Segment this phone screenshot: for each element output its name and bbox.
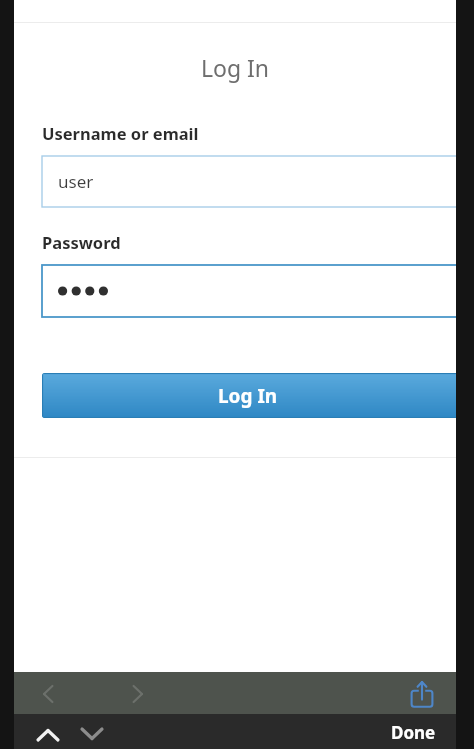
- button[interactable]: Share: [402, 674, 442, 714]
- button[interactable]: Forward: [116, 676, 160, 712]
- staticText: Password: [42, 231, 121, 253]
- button[interactable]: Username or email input: [42, 156, 472, 207]
- button[interactable]: Done: [376, 716, 450, 748]
- staticText: Username or email: [42, 122, 199, 144]
- staticText: Log In: [218, 383, 278, 409]
- button[interactable]: Log In: [42, 373, 472, 418]
- button[interactable]: Next field: [70, 716, 114, 748]
- staticText: user: [58, 170, 94, 193]
- button[interactable]: Back: [26, 676, 70, 712]
- button[interactable]: Password input: [42, 265, 472, 317]
- staticText: Done: [391, 721, 436, 744]
- button[interactable]: Previous field: [26, 716, 70, 748]
- staticText: Log In: [14, 52, 456, 84]
